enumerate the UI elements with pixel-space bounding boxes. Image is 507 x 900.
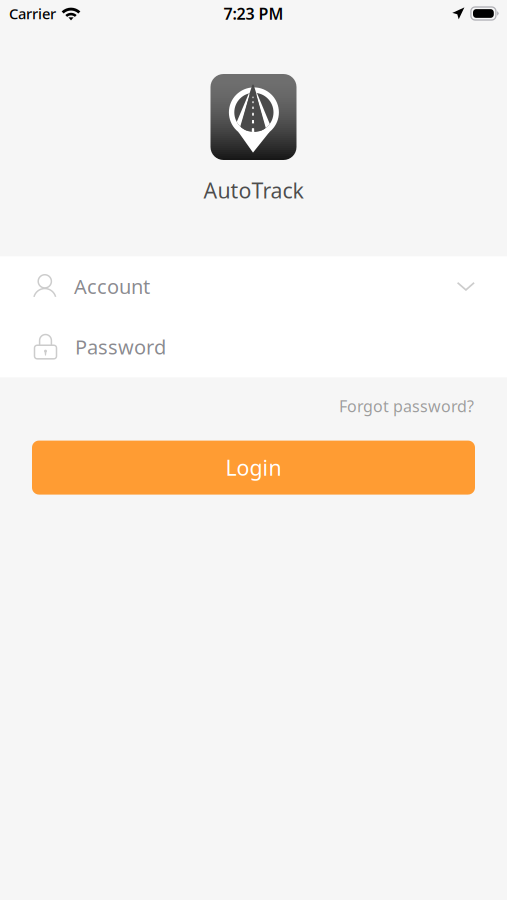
button[interactable]: Login — [32, 441, 475, 495]
staticText: Password — [75, 334, 166, 360]
button[interactable]: Forgot password? — [337, 390, 476, 421]
staticText: Account — [74, 273, 150, 300]
staticText: 7:23 PM — [223, 3, 283, 24]
staticText: Login — [225, 453, 281, 482]
staticText: AutoTrack — [203, 176, 303, 204]
button[interactable]: Account — [0, 256, 507, 316]
button[interactable]: Password — [0, 316, 507, 377]
staticText: Carrier — [9, 4, 56, 23]
staticText: Forgot password? — [339, 395, 474, 416]
